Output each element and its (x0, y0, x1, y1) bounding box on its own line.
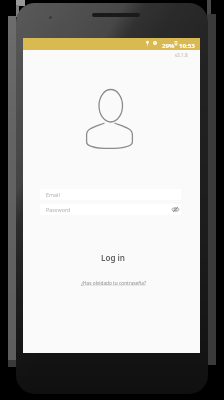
staticText: 29% (162, 41, 175, 49)
staticText: Password (46, 206, 71, 213)
button[interactable]: Password (40, 204, 181, 215)
button[interactable]: Log in (89, 250, 137, 264)
staticText: ¿Has olvidado tu contraseña? (81, 280, 146, 286)
staticText: 10:53 (179, 41, 195, 49)
staticText: v2.1.8 (175, 52, 188, 58)
staticText: Email (46, 191, 60, 198)
button[interactable]: ¿Has olvidado tu contraseña? (54, 277, 172, 288)
staticText: Log in (101, 252, 126, 263)
button[interactable]: Email (40, 189, 181, 200)
other: Show password (172, 206, 179, 213)
